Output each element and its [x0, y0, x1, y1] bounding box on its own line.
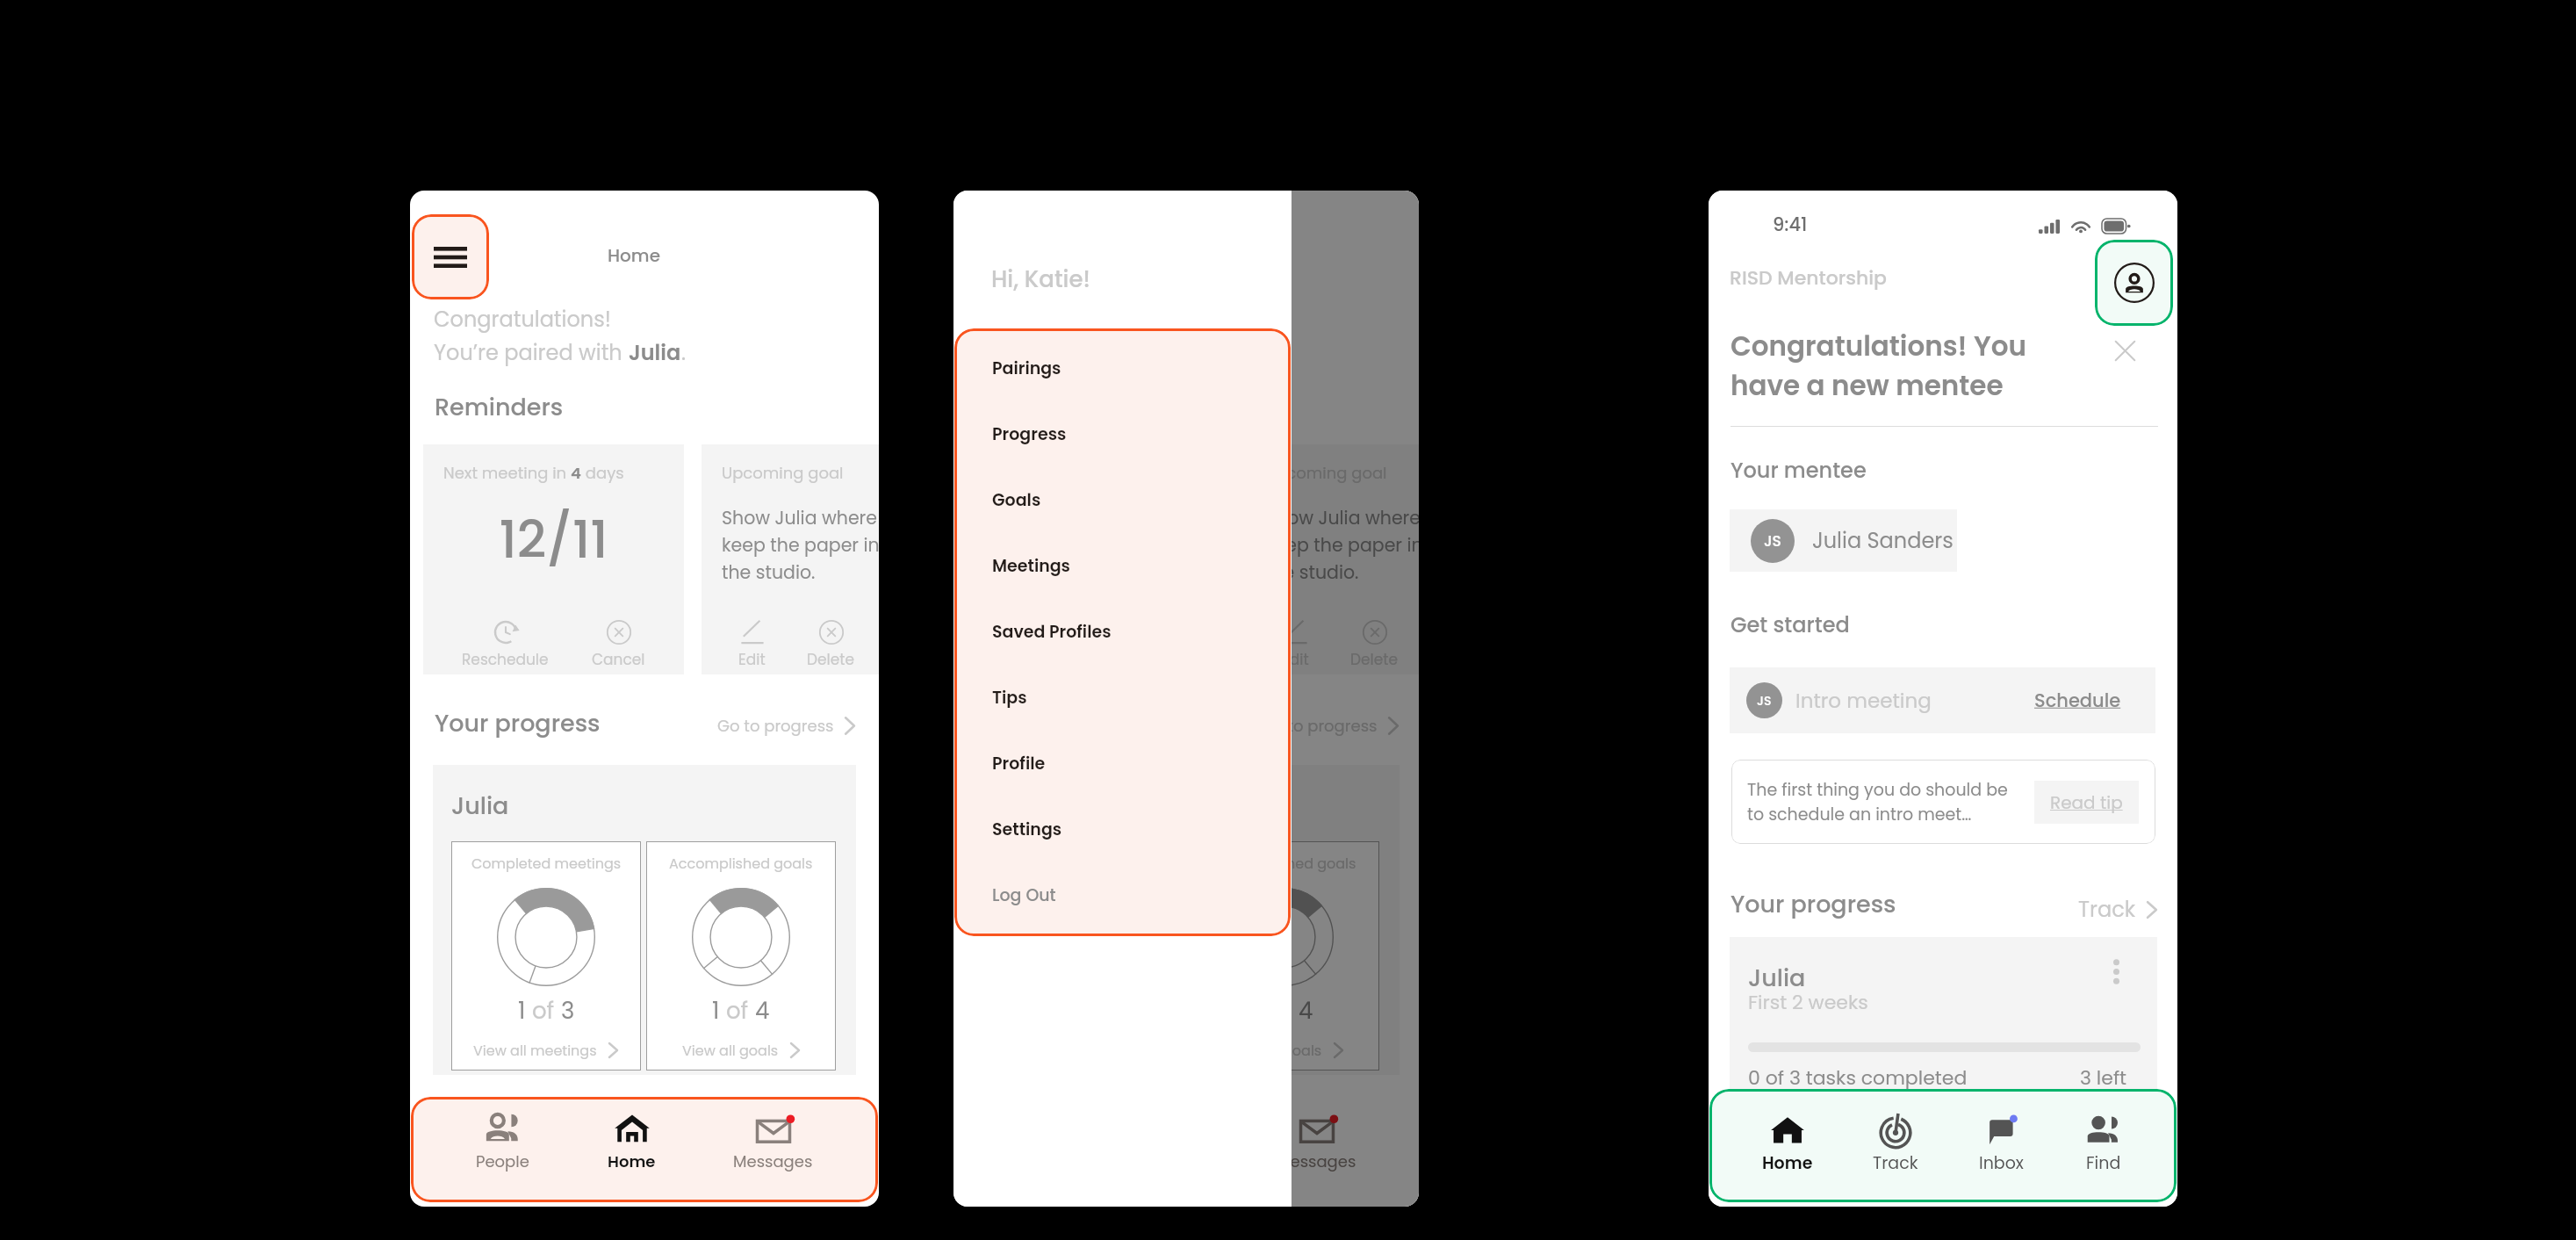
- button[interactable]: Goals: [954, 467, 1291, 533]
- staticText: 4: [571, 462, 581, 484]
- staticText: 0 of 3 tasks completed: [1748, 1064, 1968, 1092]
- staticText: Home: [1762, 1151, 1813, 1175]
- staticText: Accomplished goals: [1292, 854, 1356, 873]
- button[interactable]: Home: [595, 1108, 668, 1175]
- staticText: 12/11: [423, 504, 684, 575]
- button[interactable]: JS: [1730, 509, 1957, 572]
- button[interactable]: Reschedule: [457, 619, 554, 670]
- staticText: Settings: [992, 818, 1062, 841]
- staticText: Schedule: [2034, 688, 2121, 713]
- staticText: Track: [1873, 1151, 1918, 1175]
- staticText: 4: [1299, 995, 1313, 1027]
- staticText: 1: [712, 995, 720, 1027]
- staticText: JS: [1764, 530, 1781, 552]
- staticText: View all goals: [682, 1041, 779, 1060]
- staticText: Your progress: [435, 707, 601, 740]
- staticText: Goals: [992, 488, 1041, 512]
- staticText: Intro meeting: [1795, 687, 1932, 715]
- staticText: View all goals: [1292, 1041, 1322, 1060]
- button[interactable]: Open navigation menu: [412, 214, 489, 299]
- staticText: of: [720, 995, 755, 1027]
- staticText: RISD Mentorship: [1730, 264, 1887, 292]
- button[interactable]: Delete: [1345, 619, 1404, 670]
- staticText: Tips: [992, 686, 1027, 710]
- staticText: Profile: [992, 752, 1046, 775]
- staticText: days: [581, 462, 624, 484]
- staticText: First 2 weeks: [1748, 989, 1868, 1016]
- staticText: 3 left: [2080, 1064, 2127, 1092]
- button[interactable]: Go to progress: [656, 715, 856, 737]
- button[interactable]: Accomplished goals: [1292, 841, 1379, 1071]
- staticText: Reminders: [435, 391, 564, 424]
- staticText: Progress: [992, 422, 1067, 446]
- button[interactable]: Edit: [733, 619, 771, 670]
- staticText: Congratulations! You have a new mentee: [1731, 327, 2026, 405]
- staticText: Home: [520, 243, 748, 268]
- staticText: Meetings: [992, 554, 1070, 578]
- staticText: Read tip: [2050, 790, 2123, 815]
- button[interactable]: Messages: [1292, 1108, 1369, 1175]
- staticText: JS: [1757, 692, 1772, 710]
- staticText: Upcoming goal: [722, 462, 844, 484]
- staticText: Your mentee: [1731, 456, 1867, 486]
- button[interactable]: Edit: [1292, 619, 1314, 670]
- button[interactable]: Read tip: [2034, 781, 2139, 824]
- button[interactable]: Messages: [721, 1108, 825, 1175]
- button[interactable]: Delete: [802, 619, 860, 670]
- button[interactable]: JS: [1730, 667, 2155, 733]
- staticText: Julia: [1748, 962, 1806, 995]
- button[interactable]: Saved Profiles: [954, 599, 1291, 665]
- staticText: You’re paired with: [434, 338, 629, 368]
- button[interactable]: Next meeting in: [423, 444, 684, 674]
- button[interactable]: Upcoming goal: [702, 444, 879, 674]
- button[interactable]: Upcoming goal: [1292, 444, 1419, 674]
- staticText: Upcoming goal: [1292, 462, 1387, 484]
- button[interactable]: Accomplished goals: [646, 841, 836, 1071]
- button[interactable]: Completed meetings: [451, 841, 641, 1071]
- button[interactable]: Close: [2105, 331, 2144, 370]
- staticText: Delete: [807, 649, 855, 670]
- button[interactable]: Track: [1866, 1111, 1925, 1178]
- button[interactable]: Meetings: [954, 533, 1291, 599]
- staticText: Completed meetings: [471, 854, 622, 873]
- staticText: Your progress: [1731, 888, 1896, 921]
- staticText: Saved Profiles: [992, 620, 1112, 644]
- staticText: Go to progress: [1292, 715, 1378, 737]
- button[interactable]: Go to progress: [1292, 715, 1400, 737]
- button[interactable]: Find: [2076, 1111, 2131, 1178]
- staticText: 1: [518, 995, 526, 1027]
- staticText: Get started: [1731, 610, 1850, 640]
- staticText: 4: [755, 995, 770, 1027]
- button[interactable]: Cancel: [586, 619, 651, 670]
- staticText: Julia Sanders: [1812, 526, 1954, 556]
- staticText: Log Out: [992, 883, 1056, 907]
- staticText: of: [526, 995, 561, 1027]
- staticText: Cancel: [592, 649, 645, 670]
- button[interactable]: Inbox: [1972, 1111, 2031, 1178]
- button[interactable]: Home: [1755, 1111, 1820, 1178]
- staticText: Edit: [1292, 649, 1309, 670]
- button[interactable]: Profile: [2095, 240, 2173, 326]
- staticText: Edit: [738, 649, 766, 670]
- staticText: Reschedule: [462, 649, 549, 670]
- staticText: Find: [2086, 1151, 2121, 1175]
- button[interactable]: Pairings: [954, 335, 1291, 401]
- button[interactable]: Progress: [954, 401, 1291, 467]
- staticText: Show Julia where we keep the paper in th…: [722, 505, 879, 585]
- staticText: Track: [2078, 895, 2136, 925]
- staticText: 3: [561, 995, 575, 1027]
- button[interactable]: Log Out: [954, 862, 1291, 928]
- button[interactable]: Tips: [954, 665, 1291, 731]
- button[interactable]: Profile: [954, 731, 1291, 797]
- staticText: Congratulations!: [434, 305, 611, 335]
- staticText: Go to progress: [717, 715, 834, 737]
- button[interactable]: More options: [2099, 955, 2133, 988]
- button[interactable]: Settings: [954, 797, 1291, 862]
- staticText: People: [476, 1150, 529, 1172]
- staticText: Delete: [1350, 649, 1399, 670]
- button[interactable]: Track: [1972, 895, 2158, 925]
- staticText: Inbox: [1979, 1151, 2024, 1175]
- staticText: .: [681, 338, 687, 368]
- button[interactable]: People: [464, 1108, 542, 1175]
